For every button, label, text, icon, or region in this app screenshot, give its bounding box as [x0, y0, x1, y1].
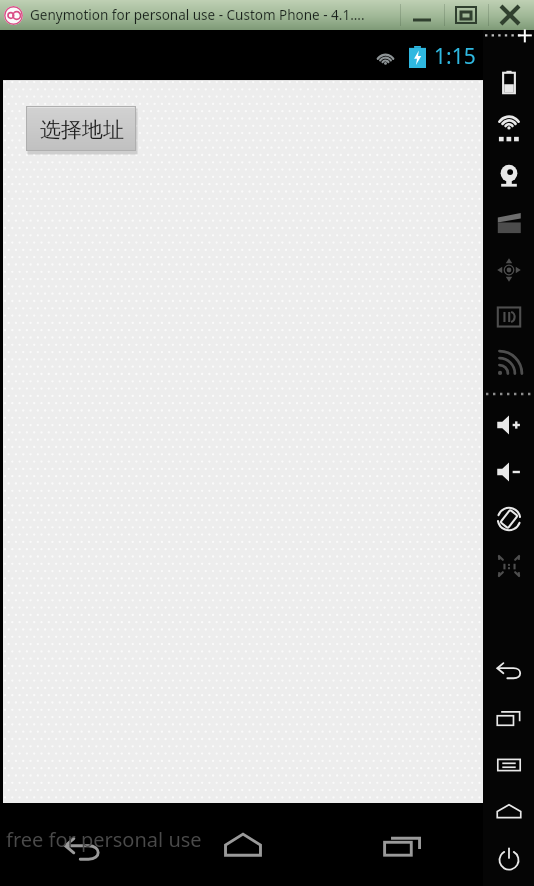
button[interactable]: Video record	[483, 199, 534, 246]
button[interactable]: Recent apps	[483, 694, 534, 741]
button[interactable]: Recent apps	[355, 810, 451, 880]
button[interactable]: Identifiers	[483, 293, 534, 340]
button[interactable]: Close	[488, 2, 532, 28]
staticText: Genymotion for personal use - Custom Pho…	[30, 6, 365, 24]
button[interactable]: Home	[195, 810, 291, 880]
button[interactable]: Rotate screen	[483, 495, 534, 542]
staticText: free for personal use	[6, 826, 202, 853]
button[interactable]: GPS	[483, 105, 534, 152]
button[interactable]: Battery	[483, 58, 534, 105]
button[interactable]: 选择地址	[26, 106, 137, 153]
button[interactable]: Volume up	[483, 401, 534, 448]
button[interactable]: Power	[483, 835, 534, 882]
button[interactable]: Navigation pad	[483, 246, 534, 293]
button[interactable]: Volume down	[483, 448, 534, 495]
button[interactable]: Menu	[483, 741, 534, 788]
staticText: 1:15	[434, 42, 476, 71]
button[interactable]: Back	[483, 647, 534, 694]
button[interactable]: Camera	[483, 152, 534, 199]
button[interactable]: Back	[35, 810, 131, 880]
button[interactable]: Actual size	[483, 542, 534, 589]
button[interactable]: Minimize	[400, 2, 444, 28]
button[interactable]: Home	[483, 788, 534, 835]
staticText: 选择地址	[40, 117, 124, 143]
button[interactable]: Network	[483, 340, 534, 387]
button[interactable]: Maximize	[444, 2, 488, 28]
